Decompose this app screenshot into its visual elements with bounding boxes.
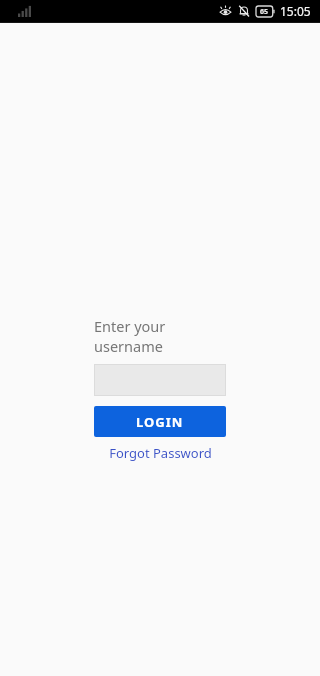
staticText: LOGIN [136, 413, 184, 431]
staticText: Enter your username [94, 316, 226, 356]
staticText: 15:05 [280, 3, 311, 19]
button[interactable]: Forgot Password [94, 444, 226, 462]
staticText: 65 [260, 7, 269, 17]
button[interactable]: LOGIN [94, 406, 226, 437]
button[interactable]: Username input field [94, 364, 226, 396]
staticText: Forgot Password [109, 444, 212, 462]
